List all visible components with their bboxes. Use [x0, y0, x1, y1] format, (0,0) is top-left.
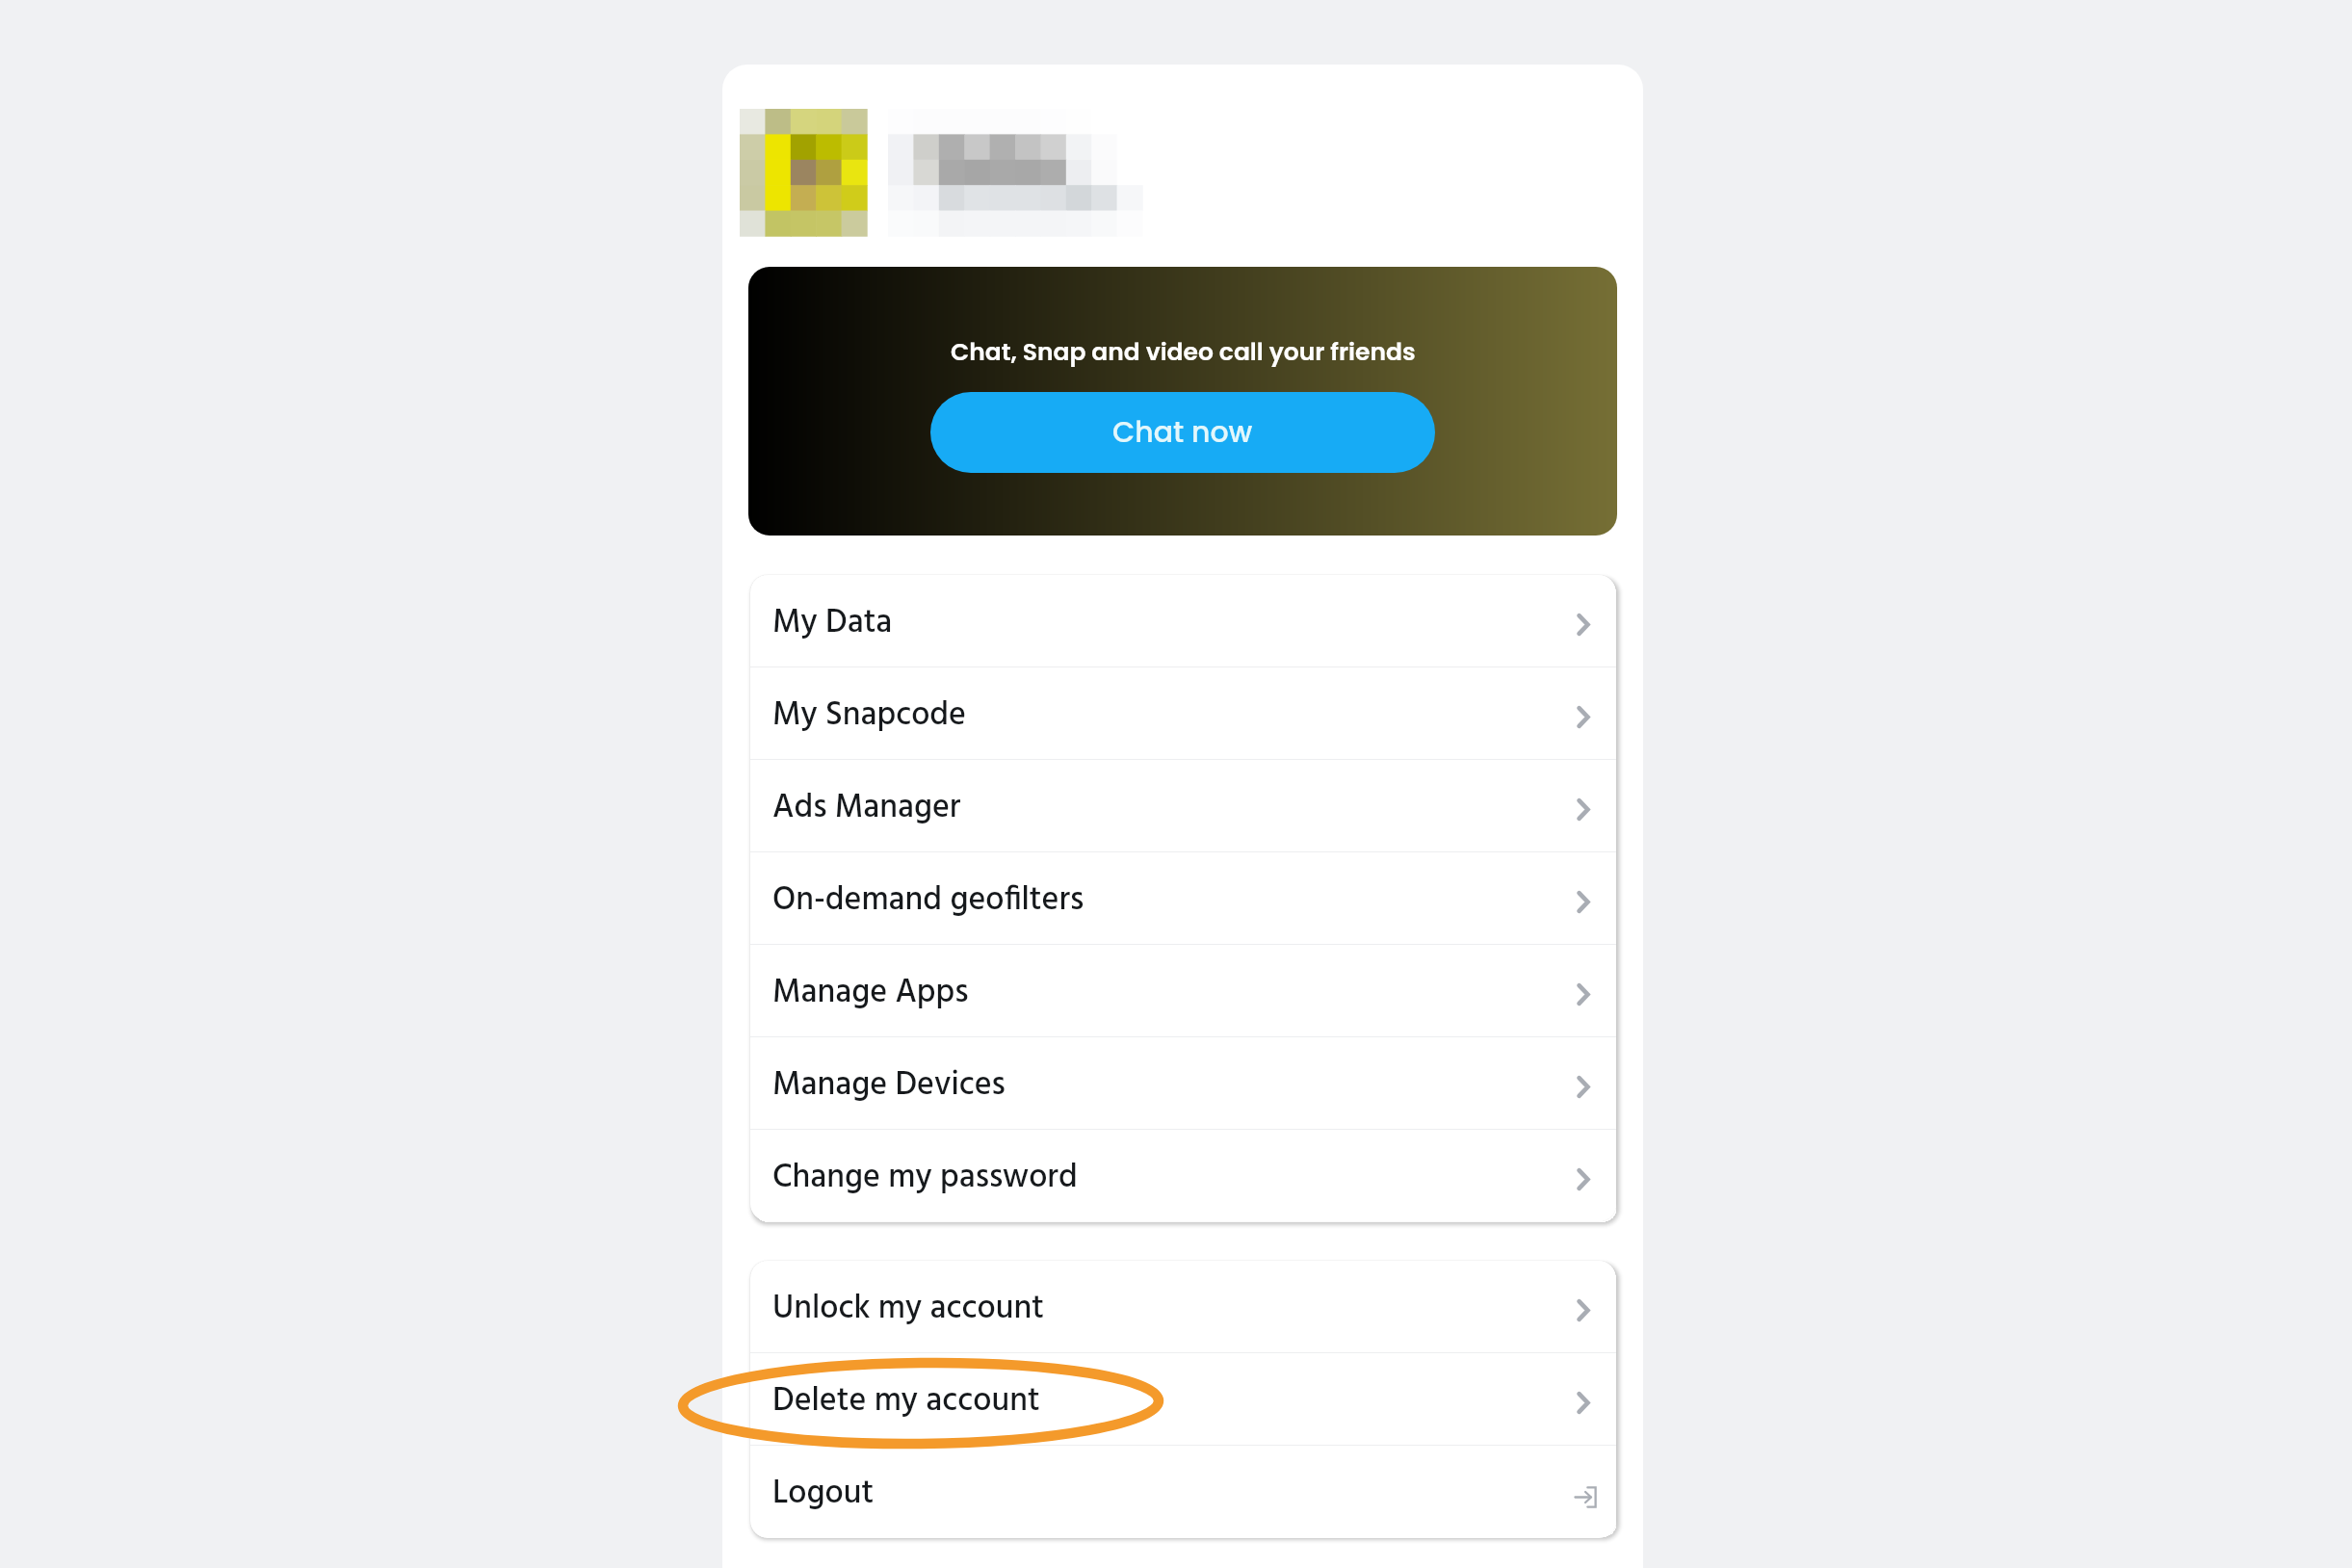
staticText: Logout [772, 1468, 875, 1520]
button[interactable]: My Snapcode [750, 667, 1616, 759]
button[interactable]: Delete my account [750, 1353, 1616, 1445]
other: Open [1577, 1299, 1590, 1321]
staticText: Chat now [1112, 412, 1253, 453]
other: Open [1577, 706, 1590, 728]
other: Logout [1575, 1486, 1597, 1508]
button[interactable]: Unlock my account [750, 1261, 1616, 1352]
staticText: Ads Manager [772, 782, 961, 834]
other: Open [1577, 614, 1590, 636]
button[interactable]: Ads Manager [750, 760, 1616, 851]
staticText: Change my password [772, 1152, 1078, 1204]
staticText: Chat, Snap and video call your friends [951, 335, 1416, 369]
other: Open [1577, 798, 1590, 821]
button[interactable]: Manage Apps [750, 945, 1616, 1036]
button[interactable]: Chat now [930, 392, 1435, 473]
button[interactable]: Manage Devices [750, 1037, 1616, 1129]
button[interactable]: My Data [750, 575, 1616, 666]
other: Open [1577, 1168, 1590, 1190]
staticText: Unlock my account [772, 1283, 1044, 1335]
other: Open [1577, 983, 1590, 1006]
staticText: Manage Devices [772, 1059, 1006, 1111]
staticText: My Data [772, 597, 893, 649]
staticText: My Snapcode [772, 690, 966, 742]
other: Open [1577, 891, 1590, 913]
button[interactable]: Logout [750, 1446, 1616, 1538]
staticText: On-demand geofilters [772, 875, 1085, 927]
staticText: Manage Apps [772, 967, 969, 1019]
button[interactable]: On-demand geofilters [750, 852, 1616, 944]
staticText: Delete my account [772, 1375, 1040, 1427]
button[interactable]: Change my password [750, 1130, 1616, 1221]
other: Open [1577, 1076, 1590, 1098]
other: Open [1577, 1392, 1590, 1414]
